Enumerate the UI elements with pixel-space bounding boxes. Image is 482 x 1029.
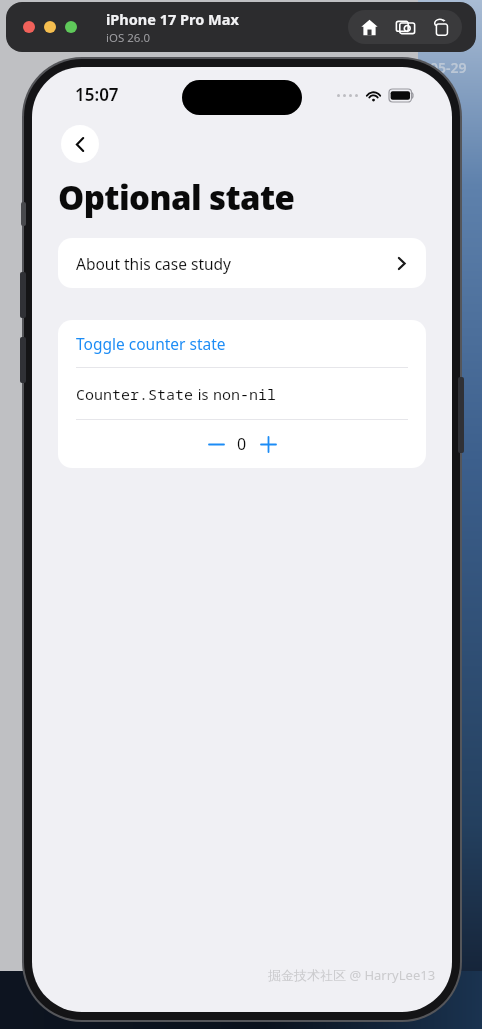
- button[interactable]: Rotate: [426, 12, 456, 42]
- button[interactable]: About this case study: [58, 238, 426, 288]
- staticText: is: [194, 384, 213, 404]
- staticText: iPhone 17 Pro Max: [106, 9, 239, 29]
- button[interactable]: Home: [354, 12, 384, 42]
- button[interactable]: [44, 21, 56, 33]
- button[interactable]: [23, 21, 35, 33]
- button[interactable]: Increment: [253, 429, 283, 459]
- staticText: Toggle counter state: [76, 333, 226, 354]
- button[interactable]: Back: [61, 125, 99, 163]
- staticText: Optional state: [58, 175, 295, 220]
- staticText: Counter.State: [76, 384, 194, 404]
- staticText: About this case study: [76, 253, 232, 274]
- staticText: 0: [237, 433, 247, 455]
- button[interactable]: Decrement: [201, 429, 231, 459]
- button[interactable]: Screenshot: [390, 12, 420, 42]
- staticText: non-nil: [213, 384, 277, 404]
- staticText: iOS 26.0: [106, 30, 151, 46]
- staticText: 15:07: [75, 83, 119, 106]
- button[interactable]: Toggle counter state: [58, 320, 426, 367]
- staticText: 05-29: [430, 58, 467, 77]
- staticText: 掘金技术社区 @ HarryLee13: [268, 966, 436, 984]
- button[interactable]: [65, 21, 77, 33]
